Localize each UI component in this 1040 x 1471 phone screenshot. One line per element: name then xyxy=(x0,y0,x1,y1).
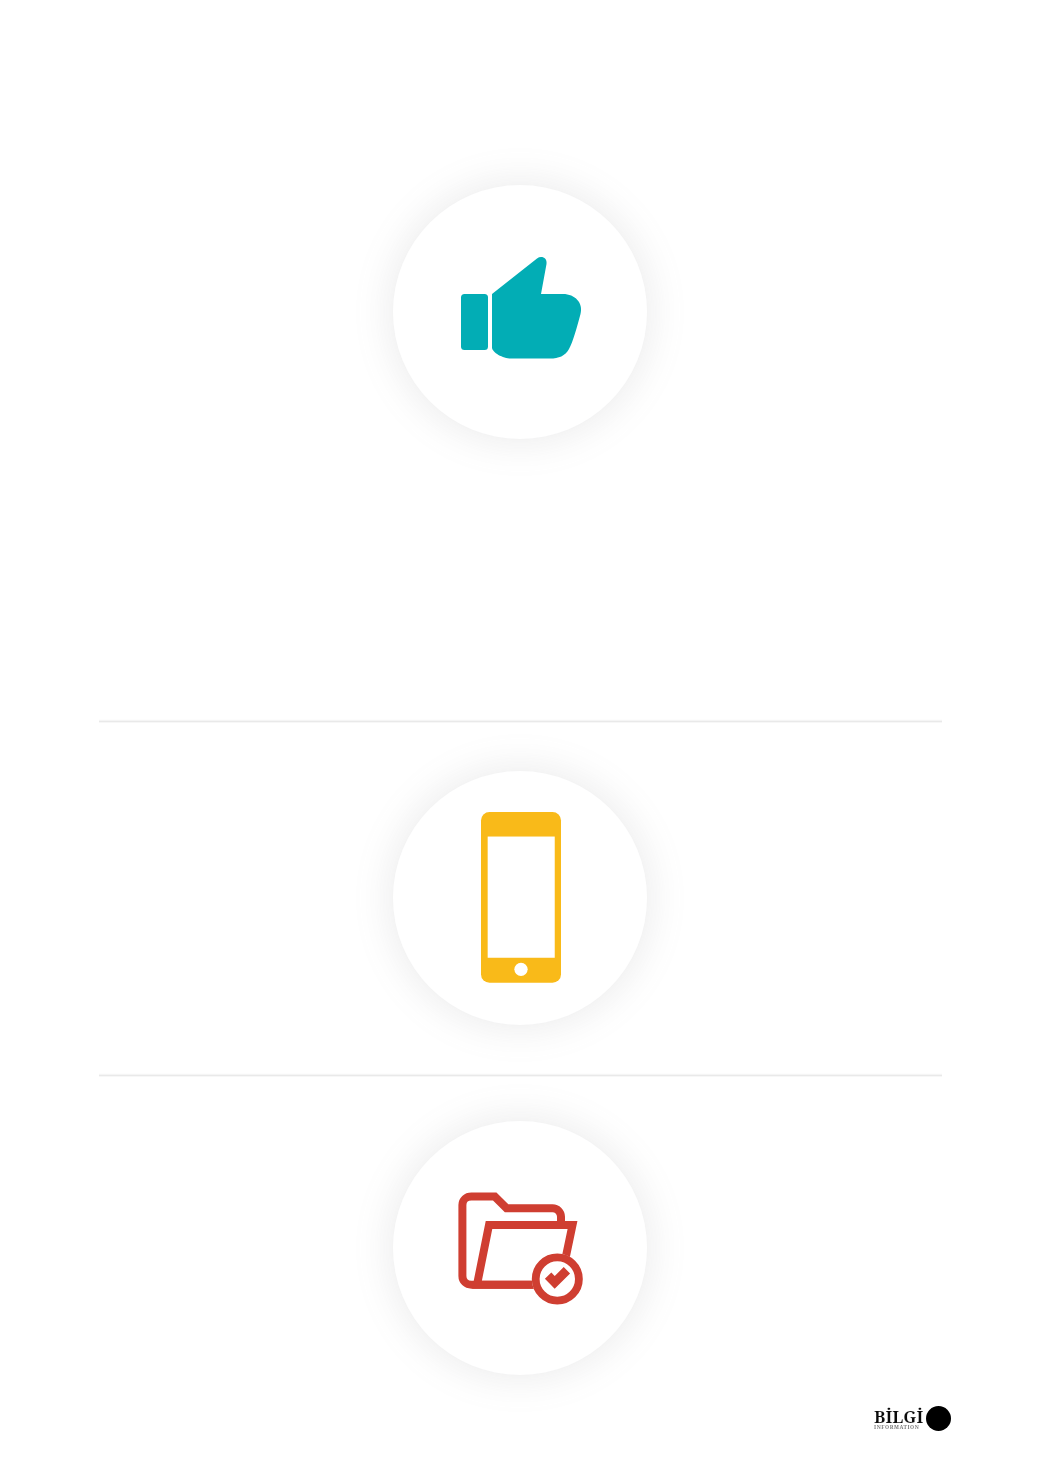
button[interactable]: Mobile device xyxy=(0,771,1040,1025)
staticText: INFORMATION xyxy=(874,1423,920,1430)
button[interactable]: Like xyxy=(0,185,1040,439)
button[interactable]: BILGI Information xyxy=(860,1396,960,1441)
button[interactable]: Verified folder xyxy=(0,1121,1040,1375)
staticText: BİLGİ xyxy=(874,1405,924,1428)
other: Mobile device xyxy=(481,812,561,981)
other: Like xyxy=(461,257,581,359)
other: Verified folder xyxy=(458,1192,583,1305)
